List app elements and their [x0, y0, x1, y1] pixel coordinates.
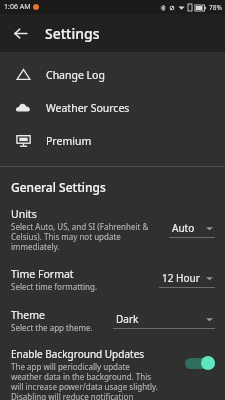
other: Premium: [16, 133, 31, 148]
staticText: Change Log: [46, 68, 105, 82]
other: Weather Sources: [15, 100, 31, 116]
staticText: 78%: [209, 3, 222, 12]
staticText: Auto: [172, 221, 195, 235]
staticText: Premium: [46, 134, 92, 148]
staticText: Units: [11, 207, 37, 221]
button[interactable]: Back: [5, 18, 35, 48]
staticText: The app will periodically update weather…: [11, 361, 161, 400]
button[interactable]: Premium: [0, 124, 225, 157]
staticText: Select the app theme.: [11, 322, 93, 333]
staticText: Theme: [11, 308, 45, 322]
staticText: Time Format: [11, 267, 74, 281]
staticText: Weather Sources: [46, 101, 130, 115]
button[interactable]: Change Log: [0, 58, 225, 91]
staticText: General Settings: [11, 179, 106, 195]
button[interactable]: Dark: [113, 312, 215, 329]
staticText: Enable Background Updates: [11, 347, 145, 361]
button[interactable]: Units: [0, 201, 225, 258]
other: Change Log: [16, 67, 31, 82]
button[interactable]: Auto: [169, 221, 215, 238]
button[interactable]: Theme: [0, 302, 225, 339]
staticText: Settings: [45, 24, 100, 43]
button[interactable]: Enable Background Updates: [0, 342, 225, 400]
button[interactable]: 12 Hour: [159, 271, 215, 288]
button[interactable]: Weather Sources: [0, 91, 225, 124]
staticText: Select time formatting.: [11, 281, 98, 292]
button[interactable]: Time Format: [0, 261, 225, 298]
staticText: Select Auto, US, and SI (Fahrenheit & Ce…: [11, 221, 159, 252]
button[interactable]: Enable Background Updates toggle: [185, 356, 215, 370]
staticText: 1:06 AM: [4, 2, 31, 12]
staticText: 12 Hour: [162, 271, 200, 285]
staticText: Dark: [116, 312, 139, 326]
